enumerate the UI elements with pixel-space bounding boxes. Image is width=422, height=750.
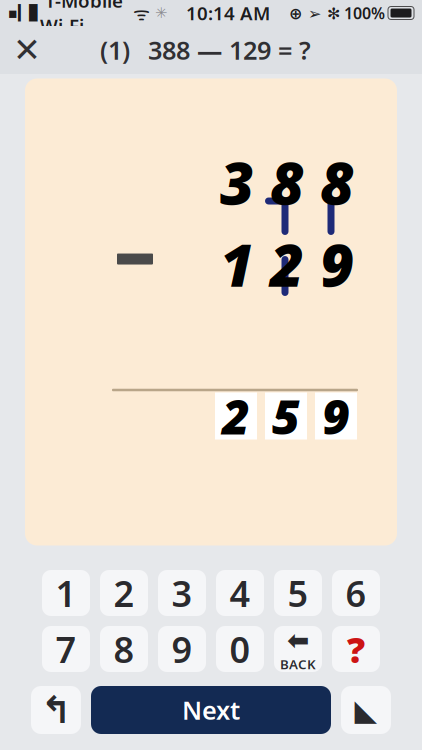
staticText: 5: [287, 569, 308, 617]
button[interactable]: 7: [42, 626, 90, 672]
button[interactable]: 9: [158, 626, 206, 672]
staticText: BACK: [280, 655, 316, 673]
button[interactable]: 6: [332, 570, 380, 616]
staticText: 5: [272, 384, 300, 448]
staticText: 129 = ?: [222, 33, 311, 67]
staticText: 1: [220, 225, 254, 303]
button[interactable]: Next: [91, 686, 331, 734]
button[interactable]: 4: [216, 570, 264, 616]
staticText: 9: [320, 225, 354, 303]
staticText: 9: [322, 384, 350, 448]
staticText: 10:14 AM: [186, 1, 270, 25]
button[interactable]: 0: [216, 626, 264, 672]
staticText: 2: [113, 569, 134, 617]
button[interactable]: 3: [158, 570, 206, 616]
staticText: 388: [148, 33, 197, 67]
staticText: (1): [100, 33, 130, 67]
staticText: ?: [347, 625, 365, 673]
staticText: 1: [55, 569, 76, 617]
button[interactable]: 8: [100, 626, 148, 672]
staticText: ◣: [354, 693, 377, 727]
staticText: ✳︎: [150, 5, 167, 21]
staticText: ↰: [40, 689, 71, 731]
staticText: 3: [171, 569, 192, 617]
staticText: 2: [222, 384, 250, 448]
button[interactable]: Close: [0, 27, 54, 73]
staticText: T-Mobile Wi-Fi: [40, 0, 123, 38]
staticText: 8: [113, 625, 134, 673]
button[interactable]: 2: [100, 570, 148, 616]
staticText: 8: [270, 143, 304, 221]
staticText: ✕: [13, 31, 41, 69]
button[interactable]: Undo: [31, 686, 81, 734]
staticText: ᯤ: [123, 1, 150, 25]
staticText: 8: [320, 143, 354, 221]
button[interactable]: 5: [274, 570, 322, 616]
button[interactable]: Hint: [332, 626, 380, 672]
staticText: ⬅: [287, 625, 309, 655]
button[interactable]: Eraser: [341, 686, 391, 734]
staticText: —: [197, 33, 222, 67]
button[interactable]: 1: [42, 570, 90, 616]
staticText: 7: [55, 625, 76, 673]
staticText: 2: [270, 225, 304, 303]
staticText: 3: [220, 143, 254, 221]
staticText: 9: [171, 625, 192, 673]
staticText: ▪▎▊: [8, 5, 40, 21]
button[interactable]: Back: [274, 626, 322, 672]
staticText: 4: [229, 569, 250, 617]
staticText: Next: [182, 693, 240, 727]
staticText: 0: [229, 625, 250, 673]
staticText: ⊕ ➢ ✻ 100%: [289, 2, 385, 24]
staticText: 6: [345, 569, 366, 617]
